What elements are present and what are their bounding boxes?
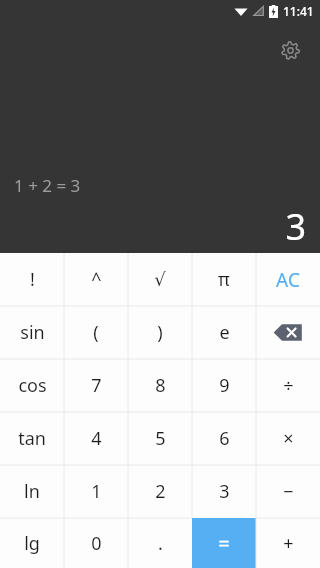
button[interactable]: 7	[64, 359, 128, 412]
button[interactable]: 5	[128, 412, 192, 465]
button[interactable]: cos	[0, 359, 64, 412]
button[interactable]: 0	[64, 518, 128, 568]
button[interactable]: lg	[0, 518, 64, 568]
staticText: 2	[155, 479, 166, 504]
button[interactable]: 1	[64, 465, 128, 518]
staticText: e	[219, 320, 230, 345]
staticText: .	[158, 531, 163, 556]
button[interactable]: π	[192, 253, 256, 306]
button[interactable]: (	[64, 306, 128, 359]
button[interactable]: AC	[256, 253, 320, 306]
button[interactable]: e	[192, 306, 256, 359]
button[interactable]: 4	[64, 412, 128, 465]
staticText: 3	[285, 202, 306, 251]
staticText: 3	[219, 479, 230, 504]
staticText: 5	[155, 426, 166, 451]
staticText: 1 + 2 = 3	[14, 174, 81, 197]
button[interactable]: Settings	[274, 34, 306, 66]
staticText: 1	[91, 479, 102, 504]
staticText: ln	[24, 479, 40, 504]
staticText: !	[30, 267, 35, 292]
staticText: 11:41	[283, 3, 314, 19]
button[interactable]: .	[128, 518, 192, 568]
button[interactable]: 3	[192, 465, 256, 518]
staticText: tan	[18, 426, 46, 451]
staticText: π	[218, 267, 230, 292]
staticText: (	[93, 320, 99, 345]
button[interactable]: +	[256, 518, 320, 568]
staticText: +	[283, 531, 294, 556]
button[interactable]: ×	[256, 412, 320, 465]
button[interactable]: ^	[64, 253, 128, 306]
button[interactable]: √	[128, 253, 192, 306]
button[interactable]: ÷	[256, 359, 320, 412]
button[interactable]: tan	[0, 412, 64, 465]
staticText: ^	[91, 267, 102, 292]
button[interactable]: ln	[0, 465, 64, 518]
staticText: 9	[219, 373, 230, 398]
button[interactable]: )	[128, 306, 192, 359]
button[interactable]: 9	[192, 359, 256, 412]
staticText: AC	[276, 267, 300, 293]
button[interactable]: !	[0, 253, 64, 306]
button[interactable]: =	[192, 518, 256, 568]
button[interactable]: −	[256, 465, 320, 518]
button[interactable]: 8	[128, 359, 192, 412]
staticText: 0	[91, 531, 102, 556]
staticText: )	[157, 320, 163, 345]
staticText: lg	[24, 531, 40, 556]
staticText: ÷	[283, 373, 294, 398]
staticText: ×	[283, 426, 294, 451]
staticText: √	[154, 269, 166, 290]
button[interactable]: 2	[128, 465, 192, 518]
button[interactable]: 6	[192, 412, 256, 465]
staticText: sin	[20, 320, 45, 345]
staticText: −	[283, 479, 294, 504]
button[interactable]: sin	[0, 306, 64, 359]
button[interactable]: Backspace	[256, 306, 320, 359]
staticText: 8	[155, 373, 166, 398]
staticText: =	[218, 530, 230, 557]
staticText: cos	[18, 373, 47, 398]
staticText: 4	[91, 426, 102, 451]
staticText: 7	[91, 373, 102, 398]
staticText: 6	[219, 426, 230, 451]
